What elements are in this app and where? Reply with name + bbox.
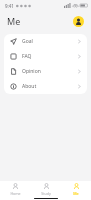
button[interactable]: Home xyxy=(0,181,31,197)
staticText: Study xyxy=(41,191,51,196)
staticText: Me xyxy=(7,15,21,27)
button[interactable]: Me xyxy=(61,181,91,197)
button[interactable]: Study xyxy=(31,181,61,197)
staticText: Opinion xyxy=(22,68,41,75)
button[interactable]: Goal xyxy=(4,34,87,49)
staticText: FAQ xyxy=(22,53,32,60)
staticText: 9:41 xyxy=(5,3,14,9)
button[interactable]: FAQ xyxy=(4,49,87,64)
staticText: Home xyxy=(10,191,21,196)
staticText: Me xyxy=(73,191,79,196)
button[interactable]: About xyxy=(4,79,87,94)
staticText: About xyxy=(22,83,37,90)
button[interactable]: Profile xyxy=(73,16,84,27)
button[interactable]: Opinion xyxy=(4,64,87,79)
staticText: Goal xyxy=(22,38,33,45)
